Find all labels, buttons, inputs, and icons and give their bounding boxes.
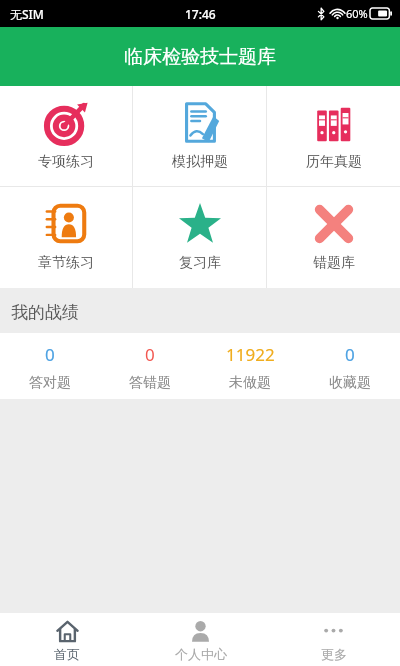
staticText: 历年真题 [306, 153, 362, 171]
button[interactable]: 个人中心 [134, 613, 267, 666]
staticText: 更多 [321, 646, 347, 662]
staticText: 无SIM [10, 6, 44, 22]
button[interactable]: 模拟押题 [133, 86, 266, 186]
button[interactable]: 更多 [267, 613, 400, 666]
staticText: 复习库 [179, 254, 221, 272]
button[interactable]: 错题库 [267, 187, 400, 288]
button[interactable]: 首页 [0, 613, 134, 666]
staticText: 60% [346, 6, 368, 21]
staticText: 0 [45, 343, 55, 366]
button[interactable]: 复习库 [133, 187, 266, 288]
button[interactable]: 章节练习 [0, 187, 132, 288]
button[interactable]: 历年真题 [267, 86, 400, 186]
staticText: 错题库 [313, 254, 355, 272]
staticText: 首页 [54, 646, 80, 662]
button[interactable]: 0 [300, 333, 400, 399]
button[interactable]: 0 [100, 333, 200, 399]
staticText: 未做题 [229, 374, 271, 392]
staticText: 专项练习 [38, 153, 94, 171]
staticText: 章节练习 [38, 254, 94, 272]
button[interactable]: 专项练习 [0, 86, 132, 186]
staticText: 个人中心 [175, 646, 227, 662]
button[interactable]: 11922 [200, 333, 300, 399]
staticText: 11922 [226, 343, 275, 366]
staticText: 答错题 [129, 374, 171, 392]
button[interactable]: 0 [0, 333, 100, 399]
staticText: 临床检验技士题库 [124, 45, 276, 69]
staticText: 17:46 [185, 6, 216, 22]
staticText: 0 [345, 343, 355, 366]
staticText: 收藏题 [329, 374, 371, 392]
staticText: 我的战绩 [11, 302, 79, 323]
staticText: 模拟押题 [172, 153, 228, 171]
staticText: 答对题 [29, 374, 71, 392]
staticText: 0 [145, 343, 155, 366]
